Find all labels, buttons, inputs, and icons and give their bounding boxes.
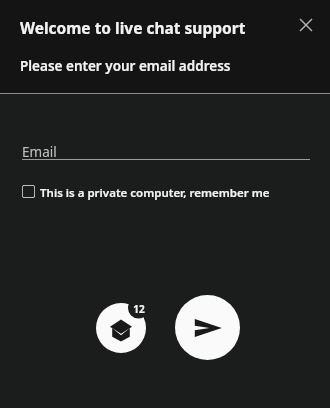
staticText: 12 bbox=[133, 302, 145, 316]
button[interactable]: Messages bbox=[96, 300, 152, 356]
staticText: Email bbox=[22, 143, 57, 161]
staticText: Please enter your email address bbox=[20, 57, 231, 75]
button[interactable]: Close bbox=[292, 11, 320, 39]
staticText: Welcome to live chat support bbox=[20, 17, 246, 38]
button[interactable]: Send bbox=[175, 295, 240, 360]
button[interactable]: This is a private computer, remember me bbox=[18, 181, 308, 203]
staticText: This is a private computer, remember me bbox=[40, 185, 270, 201]
